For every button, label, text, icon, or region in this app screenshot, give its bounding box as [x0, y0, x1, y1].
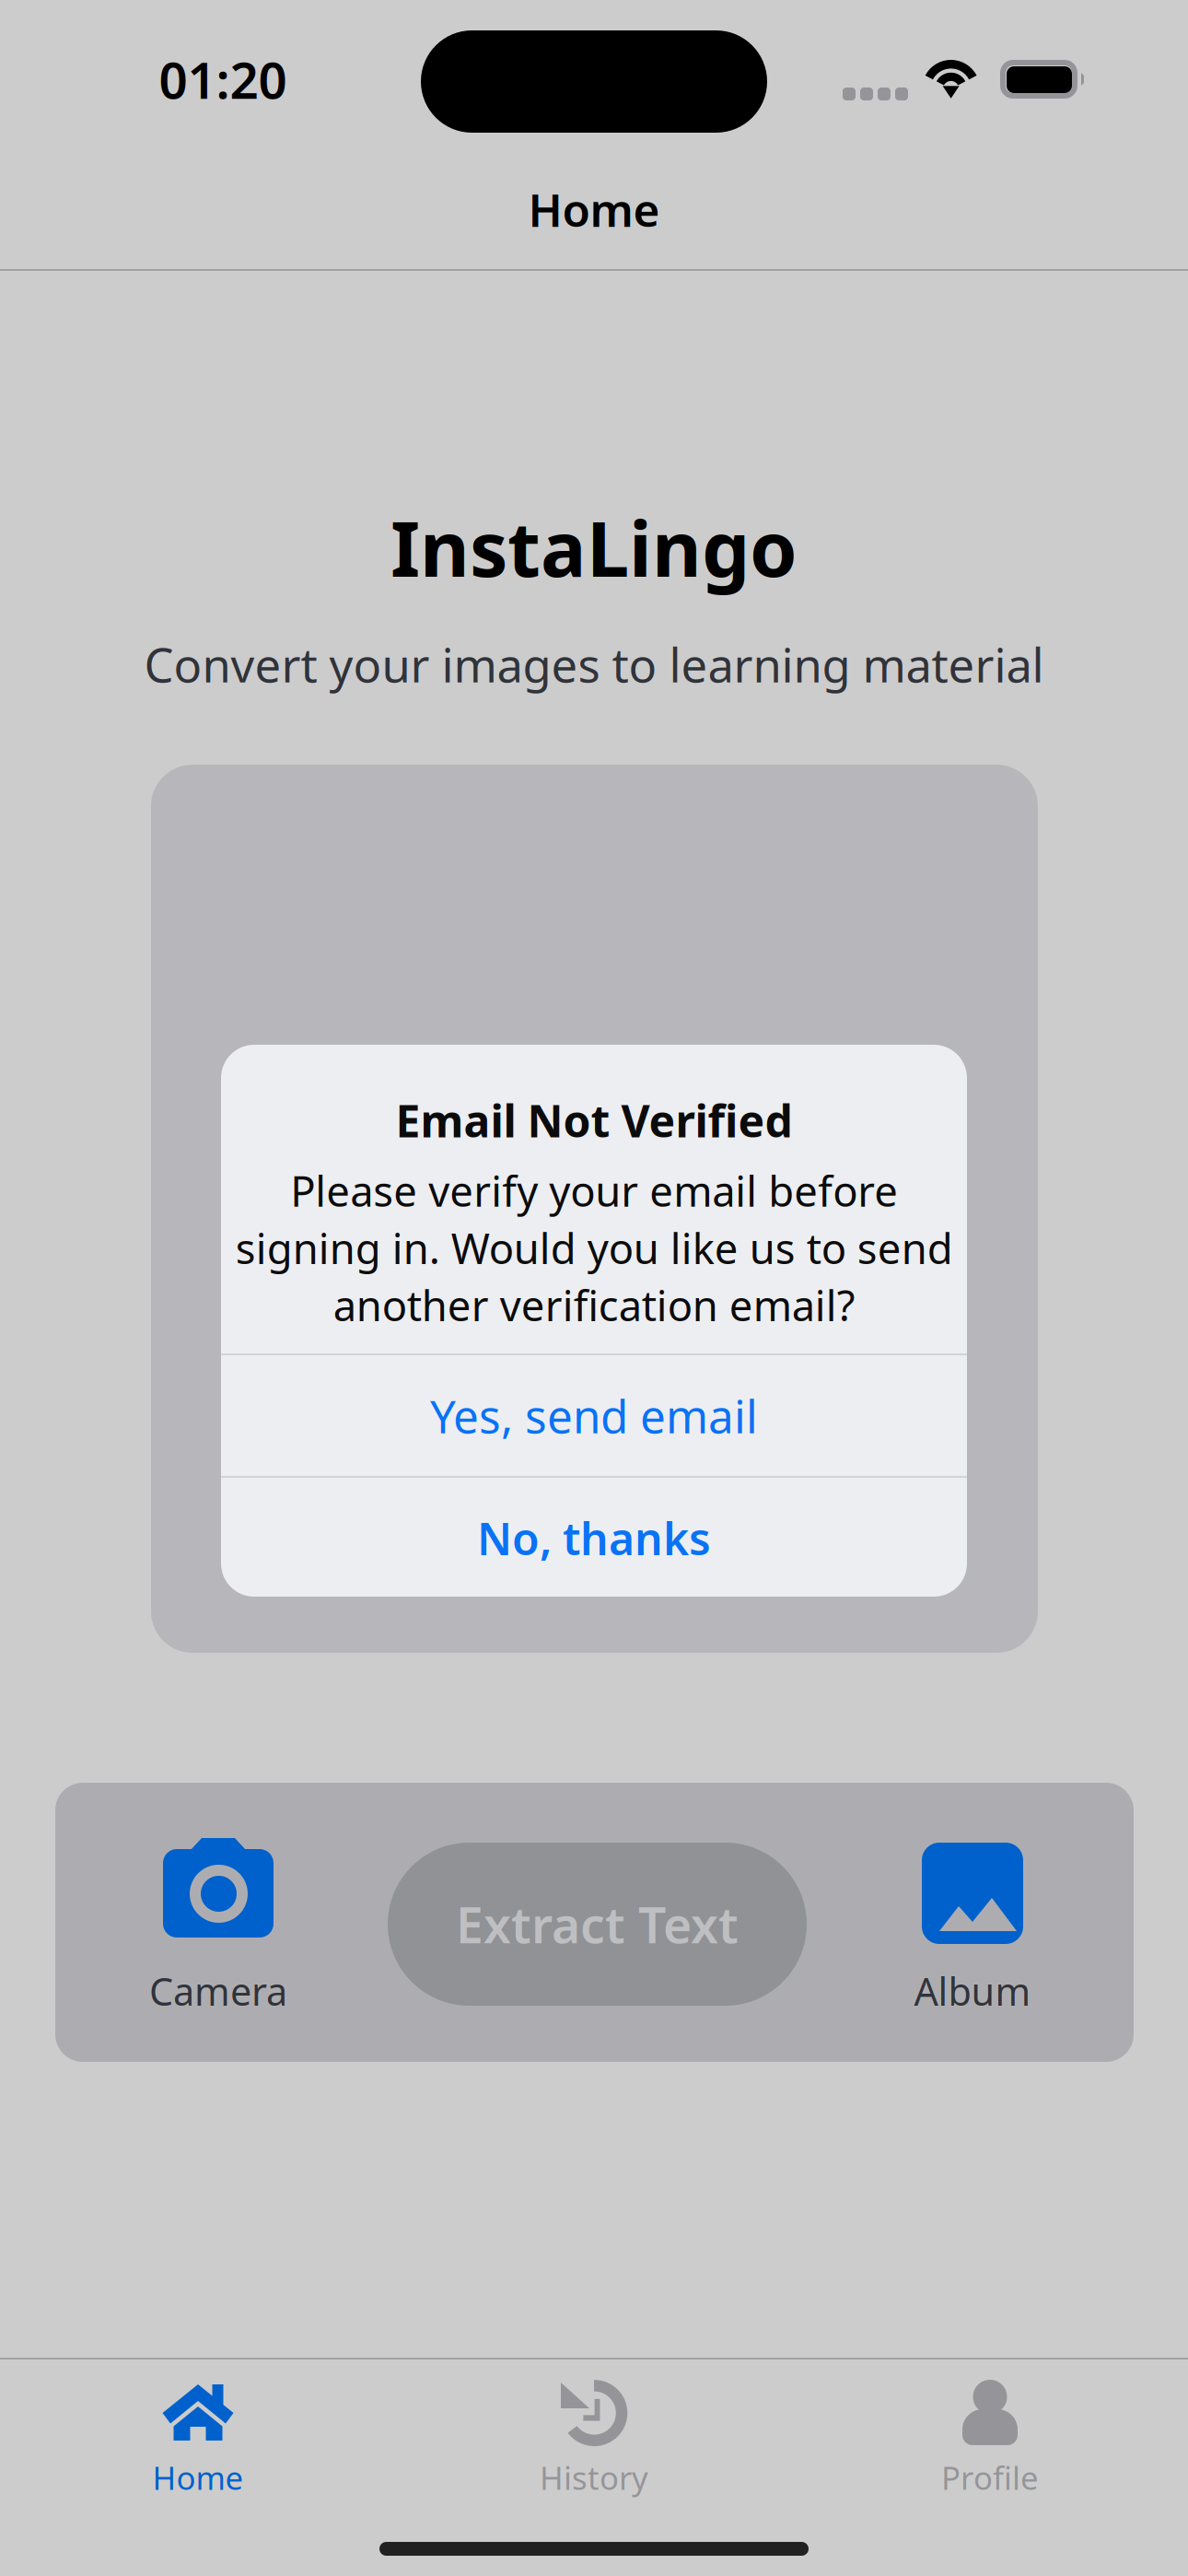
staticText: No, thanks [477, 1509, 711, 1567]
button[interactable]: History [396, 2359, 792, 2496]
staticText: 01:20 [159, 46, 287, 113]
button[interactable]: Home [0, 2359, 396, 2496]
staticText: Convert your images to learning material [144, 633, 1044, 695]
button[interactable]: No, thanks [221, 1478, 967, 1598]
button[interactable]: Yes, send email [221, 1355, 967, 1476]
staticText: Yes, send email [430, 1385, 758, 1446]
staticText: Please verify your email before signing … [235, 1163, 953, 1333]
staticText: InstaLingo [390, 497, 798, 598]
staticText: Email Not Verified [396, 1091, 792, 1150]
staticText: Album [914, 1966, 1031, 2016]
staticText: Home [152, 2456, 244, 2499]
button[interactable]: Camera [122, 1837, 315, 2011]
staticText: Home [528, 179, 660, 239]
staticText: History [540, 2456, 648, 2499]
staticText: Camera [149, 1966, 287, 2016]
button[interactable]: Extract Text [388, 1843, 807, 2006]
button[interactable]: Album [876, 1843, 1069, 2017]
button[interactable]: Profile [792, 2359, 1188, 2496]
staticText: Profile [941, 2456, 1039, 2499]
staticText: Extract Text [456, 1892, 739, 1957]
